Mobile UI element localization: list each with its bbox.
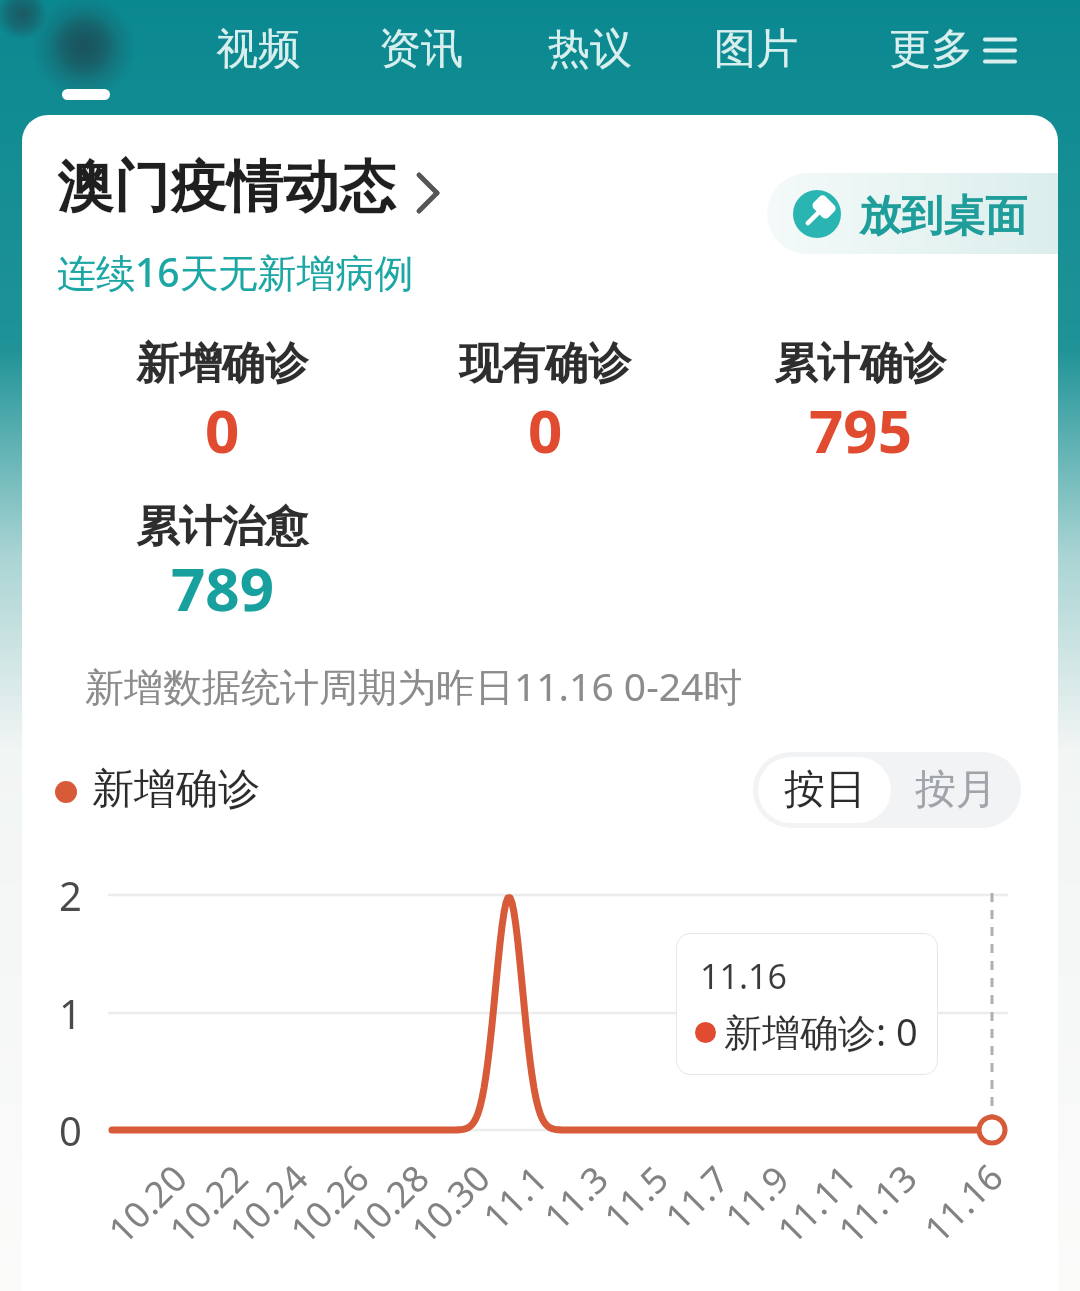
staticText: 11.7 — [654, 1155, 740, 1240]
staticText: 11.3 — [533, 1155, 619, 1240]
staticText: 新增确诊 — [136, 337, 308, 391]
staticText: 图片 — [714, 23, 798, 76]
staticText: 11.13 — [827, 1153, 928, 1254]
staticText: 10.28 — [339, 1153, 440, 1254]
staticText: 视频 — [216, 23, 300, 76]
staticText: 更多 — [889, 23, 973, 76]
staticText: 11.5 — [593, 1155, 679, 1240]
staticText: 11.11 — [766, 1153, 867, 1254]
button[interactable]: 按月 — [891, 752, 1021, 828]
staticText: 0 — [528, 389, 563, 471]
staticText: 10.22 — [158, 1153, 259, 1254]
staticText: 2 — [59, 868, 82, 922]
staticText: 按月 — [915, 764, 997, 816]
staticText: 热议 — [548, 23, 632, 76]
staticText: 10.30 — [400, 1153, 501, 1254]
staticText: 累计确诊 — [774, 337, 946, 391]
staticText: 0 — [205, 389, 240, 471]
button[interactable]: 更多 — [781, 0, 1080, 109]
staticText: 795 — [809, 389, 912, 471]
staticText: 11.1 — [472, 1155, 558, 1240]
staticText: 11.9 — [714, 1155, 800, 1240]
staticText: 新增确诊: 0 — [724, 1005, 918, 1057]
staticText: 789 — [171, 547, 274, 629]
staticText: 1 — [59, 986, 82, 1040]
staticText: 连续16天无新增病例 — [57, 245, 414, 298]
staticText: 11.16 — [700, 953, 787, 999]
button[interactable]: 图片 — [606, 0, 906, 109]
staticText: 澳门疫情动态 — [57, 152, 396, 223]
staticText: 0 — [59, 1103, 82, 1157]
button[interactable]: 资讯 — [271, 0, 571, 109]
button[interactable]: 热议 — [440, 0, 740, 109]
button[interactable]: 放到桌面 — [767, 173, 1058, 254]
button[interactable]: 视频 — [108, 0, 408, 109]
staticText: 按日 — [784, 764, 866, 816]
staticText: 新增确诊 — [92, 763, 260, 816]
button[interactable]: 按日 — [758, 757, 891, 823]
staticText: 放到桌面 — [859, 190, 1027, 243]
staticText: 累计治愈 — [136, 500, 308, 554]
staticText: 现有确诊 — [459, 337, 631, 391]
button[interactable] — [50, 150, 450, 230]
staticText: 10.24 — [218, 1153, 319, 1254]
staticText: 资讯 — [379, 23, 463, 76]
staticText: 新增数据统计周期为昨日11.16 0-24时 — [85, 659, 743, 712]
staticText: 10.20 — [97, 1153, 198, 1254]
button[interactable] — [983, 37, 1017, 64]
staticText: 11.16 — [913, 1152, 1014, 1253]
staticText: 10.26 — [279, 1153, 380, 1254]
